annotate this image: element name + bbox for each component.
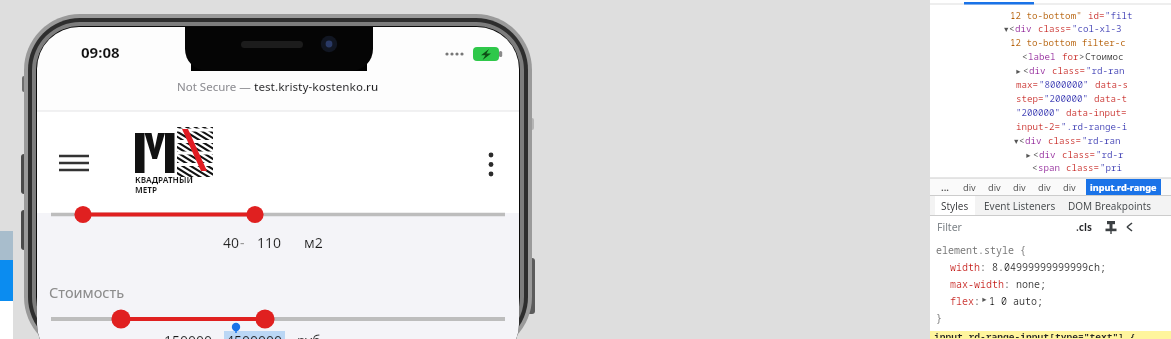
- staticText: "200000": [1044, 92, 1094, 105]
- button[interactable]: Styles: [941, 199, 969, 213]
- staticText: Стоимос: [1085, 50, 1124, 63]
- staticText: : 8.04999999999999ch;: [980, 260, 1106, 274]
- staticText: 40: [223, 233, 240, 252]
- staticText: 12 to-bottom filter-c: [1010, 36, 1126, 49]
- staticText: Not Secure —: [177, 79, 254, 95]
- staticText: input-2=: [1016, 120, 1061, 133]
- staticText: span: [1038, 161, 1066, 174]
- staticText: test.kristy-kostenko.ru: [254, 79, 379, 95]
- staticText: КВАДРАТНЫЙ: [135, 174, 193, 185]
- staticText: "rd-ran: [1082, 134, 1121, 147]
- staticText: "rd-ran: [1086, 64, 1125, 77]
- button[interactable]: div: [1061, 181, 1078, 194]
- staticText: :: [974, 294, 980, 308]
- button[interactable]: 4500000: [226, 331, 283, 339]
- staticText: element.style {: [936, 243, 1026, 257]
- staticText: class=: [1062, 148, 1096, 161]
- staticText: 09:08: [81, 42, 120, 62]
- staticText: id=: [1088, 9, 1105, 22]
- staticText: class=: [1048, 134, 1082, 147]
- staticText: "rd-r: [1096, 148, 1124, 161]
- staticText: max-width: [950, 277, 1004, 291]
- staticText: label: [1028, 50, 1062, 63]
- button[interactable]: ...: [938, 181, 953, 194]
- staticText: }: [936, 311, 942, 325]
- button[interactable]: div: [1011, 181, 1028, 194]
- staticText: ▶: [1014, 66, 1023, 76]
- staticText: input.rd-range: [1090, 181, 1157, 194]
- button[interactable]: div: [961, 181, 978, 194]
- staticText: data-s: [1095, 78, 1129, 91]
- staticText: Стоимость: [49, 282, 125, 302]
- staticText: class=: [1066, 161, 1100, 174]
- staticText: class=: [1052, 64, 1086, 77]
- staticText: "200000": [1016, 106, 1066, 119]
- staticText: width: [950, 260, 980, 274]
- staticText: div: [988, 181, 1001, 194]
- staticText: <: [1033, 148, 1039, 161]
- staticText: <: [1032, 161, 1038, 174]
- staticText: div: [963, 181, 976, 194]
- staticText: <: [1022, 50, 1028, 63]
- button[interactable]: Pin: [1104, 220, 1118, 234]
- staticText: "pri: [1100, 161, 1123, 174]
- staticText: Filter: [937, 220, 962, 234]
- staticText: max=: [1016, 78, 1039, 91]
- staticText: "8000000": [1039, 78, 1095, 91]
- button[interactable]: Menu: [57, 149, 91, 177]
- staticText: 110: [257, 233, 282, 252]
- staticText: Styles: [941, 199, 969, 213]
- staticText: <: [1023, 64, 1029, 77]
- button[interactable]: Event Listeners: [981, 199, 1059, 213]
- staticText: <: [1009, 22, 1015, 35]
- staticText: 150000: [164, 331, 213, 339]
- button[interactable]: input.rd-range: [1090, 181, 1157, 194]
- staticText: "filt: [1105, 9, 1133, 22]
- staticText: step=: [1016, 92, 1044, 105]
- staticText: div: [1039, 148, 1062, 161]
- staticText: >: [1079, 50, 1085, 63]
- button[interactable]: div: [1036, 181, 1053, 194]
- button[interactable]: More options: [477, 149, 505, 181]
- staticText: div: [1025, 134, 1048, 147]
- button[interactable]: Collapse: [1124, 221, 1136, 233]
- staticText: flex: [950, 294, 974, 308]
- staticText: "col-xl-3: [1072, 22, 1122, 35]
- staticText: class=: [1038, 22, 1072, 35]
- staticText: input.rd-range-input[type="text"] {: [934, 330, 1136, 338]
- staticText: МЕТР: [135, 184, 158, 195]
- staticText: Event Listeners: [984, 199, 1056, 213]
- staticText: ▼: [1004, 24, 1009, 34]
- staticText: data-input=: [1066, 106, 1127, 119]
- staticText: 12 to-bottom": [1010, 9, 1088, 22]
- staticText: ".rd-range-i: [1061, 120, 1128, 133]
- button[interactable]: DOM Breakpoints: [1065, 199, 1155, 213]
- staticText: div: [1038, 181, 1051, 194]
- button[interactable]: div: [986, 181, 1003, 194]
- staticText: ▼: [1014, 136, 1019, 146]
- staticText: .cls: [1076, 220, 1092, 234]
- button[interactable]: Квадратный метр logo: [135, 127, 211, 197]
- button[interactable]: .cls: [1074, 220, 1094, 234]
- staticText: div: [1013, 181, 1026, 194]
- staticText: : none;: [1004, 277, 1046, 291]
- staticText: for: [1062, 50, 1079, 63]
- staticText: div: [1029, 64, 1052, 77]
- staticText: -: [240, 233, 245, 252]
- staticText: м2: [304, 233, 323, 252]
- staticText: ▶: [1024, 150, 1033, 160]
- staticText: руб.: [297, 331, 325, 339]
- staticText: DOM Breakpoints: [1068, 199, 1152, 213]
- staticText: div: [1063, 181, 1076, 194]
- staticText: data-t: [1094, 92, 1128, 105]
- staticText: div: [1015, 22, 1038, 35]
- staticText: 4500000: [226, 331, 283, 339]
- staticText: ▶: [980, 294, 989, 304]
- staticText: ...: [941, 181, 950, 194]
- staticText: 1 0 auto;: [989, 294, 1043, 308]
- staticText: <: [1019, 134, 1025, 147]
